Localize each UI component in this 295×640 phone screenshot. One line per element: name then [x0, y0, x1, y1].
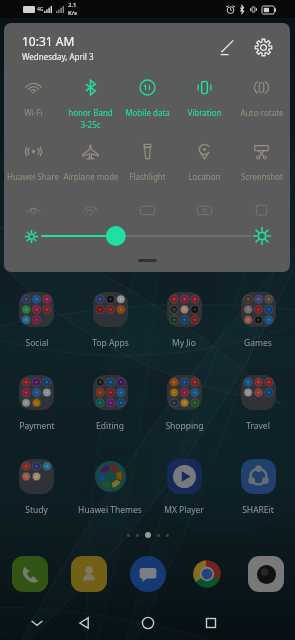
- staticText: SHAREit: [242, 504, 274, 516]
- button[interactable]: honor Band 3-25c: [62, 65, 119, 131]
- button[interactable]: Study: [0, 459, 73, 517]
- staticText: K/s: [68, 9, 77, 17]
- staticText: Airplane mode: [63, 171, 119, 182]
- button[interactable]: MX Player: [147, 459, 221, 517]
- button[interactable]: Home: [132, 607, 164, 639]
- staticText: My Jio: [172, 337, 196, 349]
- button[interactable]: Chrome: [177, 556, 236, 592]
- staticText: 2.1: [68, 1, 77, 9]
- staticText: Editing: [96, 420, 124, 432]
- button[interactable]: Messages: [118, 556, 177, 592]
- staticText: Study: [25, 504, 48, 516]
- button[interactable]: Shopping: [147, 375, 221, 433]
- button[interactable]: Mobile data: [119, 65, 176, 118]
- staticText: Screenshot: [241, 171, 283, 182]
- button[interactable]: Games: [221, 292, 295, 350]
- button[interactable]: Back: [68, 607, 100, 639]
- staticText: 10:31 AM: [22, 33, 75, 49]
- button[interactable]: Recents: [195, 607, 227, 639]
- button[interactable]: Contacts: [59, 556, 118, 592]
- staticText: MX Player: [164, 504, 204, 516]
- button[interactable]: Vibration: [176, 65, 233, 118]
- staticText: 4G: [37, 6, 44, 13]
- staticText: Flashlight: [129, 171, 166, 182]
- staticText: Mobile data: [125, 107, 170, 118]
- staticText: Top Apps: [92, 337, 129, 349]
- staticText: Huawei Themes: [78, 504, 142, 516]
- staticText: honor Band 3-25c: [68, 107, 113, 131]
- button[interactable]: Editing: [73, 375, 147, 433]
- button[interactable]: Auto-rotate: [233, 65, 290, 118]
- button[interactable]: My Jio: [147, 292, 221, 350]
- button[interactable]: SHAREit: [221, 459, 295, 517]
- staticText: Auto-rotate: [240, 107, 284, 118]
- staticText: Location: [188, 171, 221, 182]
- staticText: Huawei Share: [7, 171, 59, 182]
- button[interactable]: Huawei Themes: [73, 459, 147, 517]
- staticText: Travel: [246, 420, 270, 432]
- button[interactable]: Wi-Fi: [4, 65, 62, 118]
- staticText: Payment: [19, 420, 55, 432]
- button[interactable]: Settings: [250, 34, 276, 60]
- staticText: Social: [25, 337, 49, 349]
- button[interactable]: Huawei Share: [4, 129, 62, 182]
- button[interactable]: Edit quick settings: [213, 34, 239, 60]
- staticText: Wi-Fi: [24, 107, 43, 118]
- staticText: Shopping: [165, 420, 204, 432]
- staticText: Wednesday, April 3: [22, 51, 94, 62]
- button[interactable]: Social: [0, 292, 73, 350]
- button[interactable]: Location: [176, 129, 233, 182]
- button[interactable]: Airplane mode: [62, 129, 119, 182]
- button[interactable]: Screenshot: [233, 129, 290, 182]
- button[interactable]: Phone: [0, 556, 59, 592]
- button[interactable]: Top Apps: [73, 292, 147, 350]
- button[interactable]: Hide: [21, 607, 53, 639]
- button[interactable]: Travel: [221, 375, 295, 433]
- staticText: Games: [244, 337, 272, 349]
- staticText: Vibration: [187, 107, 222, 118]
- button[interactable]: Camera: [236, 556, 295, 592]
- button[interactable]: Flashlight: [119, 129, 176, 182]
- button[interactable]: Payment: [0, 375, 73, 433]
